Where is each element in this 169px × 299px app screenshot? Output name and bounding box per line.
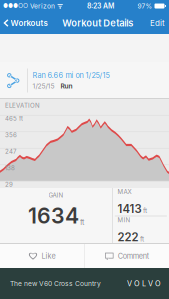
staticText: MAX <box>118 188 132 195</box>
staticText: 29 <box>5 181 13 188</box>
staticText: Edit <box>150 18 165 28</box>
staticText: 138 <box>5 164 15 172</box>
staticText: Workout Details <box>62 17 133 29</box>
staticText: 1/25/15 <box>33 82 55 90</box>
button[interactable]: Comment <box>85 244 169 268</box>
staticText: ft <box>140 235 144 243</box>
staticText: ELEVATION <box>5 102 40 109</box>
staticText: 465 ft <box>5 115 23 122</box>
button[interactable]: Like <box>0 244 84 268</box>
staticText: 222 <box>118 230 139 244</box>
staticText: MIN <box>118 216 131 224</box>
staticText: 247 <box>5 148 16 155</box>
button[interactable]: The new V60 Cross Country <box>0 268 169 299</box>
staticText: Run <box>61 82 73 90</box>
staticText: Workouts <box>10 18 47 28</box>
staticText: ft <box>80 218 84 227</box>
staticText: Verizon <box>30 2 55 10</box>
staticText: Like <box>41 252 55 260</box>
staticText: ft <box>143 207 147 215</box>
button[interactable]: Ran 6.66 mi on 1/25/15 <box>0 62 169 99</box>
staticText: V O L V O <box>127 279 161 288</box>
staticText: 356 <box>5 131 17 139</box>
staticText: GAIN <box>48 191 63 199</box>
staticText: 1634 <box>28 203 79 229</box>
staticText: Comment <box>118 252 149 260</box>
staticText: The new V60 Cross Country <box>10 279 101 288</box>
button[interactable]: Workouts <box>0 12 49 34</box>
staticText: 1413 <box>118 202 142 216</box>
staticText: 8:23 AM <box>87 2 114 10</box>
staticText: ●●●○○ <box>3 3 28 9</box>
staticText: Ran 6.66 mi on 1/25/15 <box>33 71 110 80</box>
staticText: 97% <box>137 2 152 10</box>
button[interactable]: Edit <box>146 12 169 34</box>
